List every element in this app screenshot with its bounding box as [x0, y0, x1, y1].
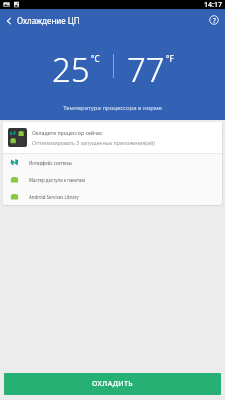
staticText: °F [166, 53, 174, 64]
staticText: 77 [127, 47, 165, 85]
button[interactable]: Интерфейс системы [3, 154, 222, 171]
staticText: 25 [52, 47, 90, 85]
staticText: ? [213, 16, 216, 25]
staticText: Охладите процессор сейчас [32, 129, 103, 136]
button[interactable]: Мастер доступа к пакетам [3, 171, 222, 188]
staticText: Android Services Library [29, 194, 79, 200]
button[interactable]: Охладите процессор сейчас [3, 122, 222, 153]
button[interactable]: Help [203, 9, 225, 31]
staticText: 14:17 [204, 0, 222, 9]
staticText: Оптимизировать 3 запущенных приложения(и… [32, 139, 155, 146]
staticText: Охлаждение ЦП [17, 15, 80, 26]
staticText: Мастер доступа к пакетам [29, 177, 85, 183]
staticText: Температура процессора в норме [0, 104, 225, 112]
button[interactable]: ОХЛАДИТЬ [4, 373, 221, 395]
staticText: Интерфейс системы [29, 160, 72, 166]
staticText: °C [91, 53, 100, 64]
staticText: ОХЛАДИТЬ [92, 379, 134, 389]
button[interactable]: Android Services Library [3, 188, 222, 205]
button[interactable]: Back [0, 12, 17, 29]
